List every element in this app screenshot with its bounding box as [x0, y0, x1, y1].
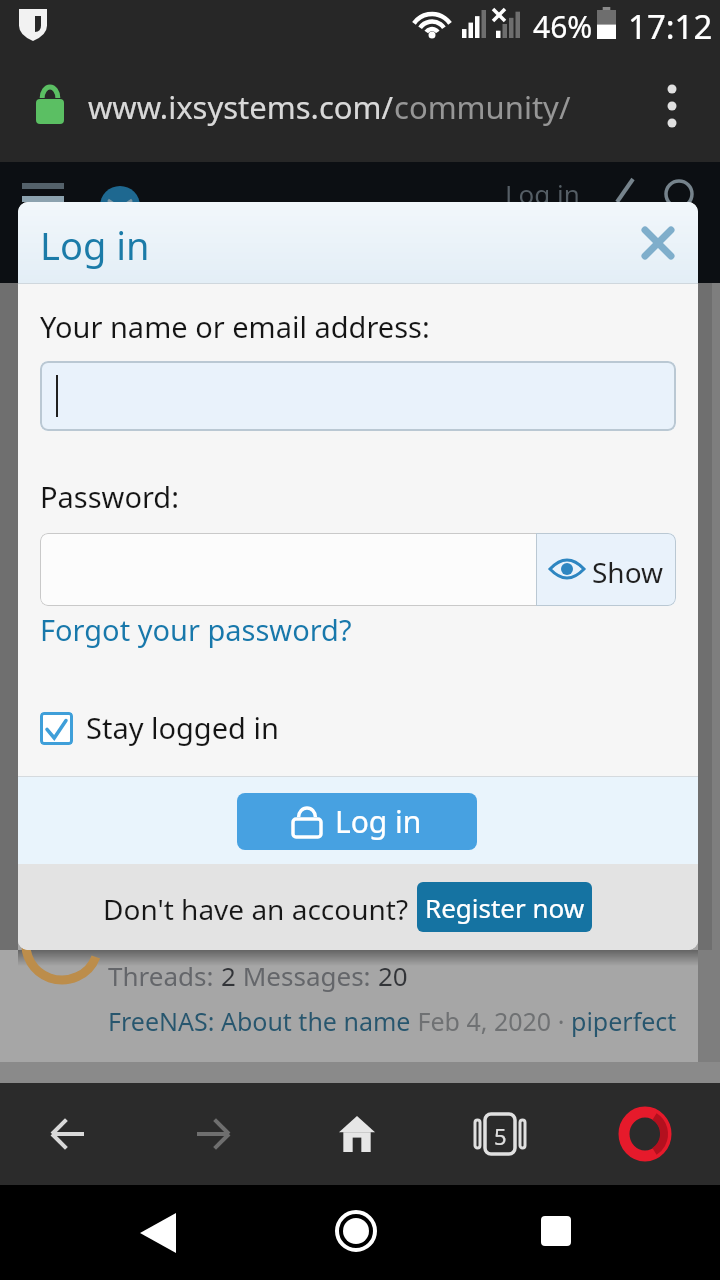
button[interactable] [615, 1104, 675, 1164]
staticText: 46% [533, 6, 593, 47]
button[interactable] [327, 1104, 387, 1164]
button[interactable] [326, 1201, 386, 1261]
staticText: Stay logged in [86, 708, 279, 747]
staticText: Threads: [108, 958, 221, 993]
staticText: Your name or email address: [40, 307, 430, 346]
staticText: Forgot your password? [40, 610, 352, 649]
button[interactable]: Register now [417, 882, 592, 932]
staticText: Log in [335, 801, 422, 842]
staticText: FreeNAS: About the name [108, 1004, 411, 1038]
staticText: community/ [394, 86, 571, 128]
staticText: 20 [378, 958, 408, 993]
staticText: Don't have an account? [103, 890, 409, 928]
button[interactable] [526, 1201, 586, 1261]
button[interactable]: Log in [237, 793, 477, 850]
staticText: www.ixsystems.com/ [88, 86, 394, 128]
staticText: Log in [505, 176, 580, 211]
button[interactable] [640, 225, 676, 261]
staticText: Log in [40, 219, 150, 271]
button[interactable]: www.ixsystems.com/ [0, 48, 720, 162]
staticText: Messages: [236, 958, 378, 993]
button[interactable] [664, 84, 680, 128]
button[interactable] [38, 1104, 98, 1164]
button[interactable]: Show [40, 533, 676, 606]
button[interactable] [183, 1104, 243, 1164]
staticText: piperfect [571, 1004, 677, 1038]
staticText: 2 [221, 958, 236, 993]
button[interactable]: Show [536, 533, 676, 606]
staticText: Password: [40, 477, 179, 516]
staticText: 17:12 [628, 4, 713, 49]
button[interactable] [40, 361, 676, 431]
button[interactable]: 5 [470, 1104, 530, 1164]
staticText: 5 [494, 1121, 507, 1151]
button[interactable]: Stay logged in [40, 700, 320, 750]
button[interactable] [128, 1203, 188, 1263]
staticText: Show [592, 553, 664, 591]
staticText: Feb 4, 2020 · [411, 1004, 571, 1038]
staticText: Register now [425, 890, 585, 925]
